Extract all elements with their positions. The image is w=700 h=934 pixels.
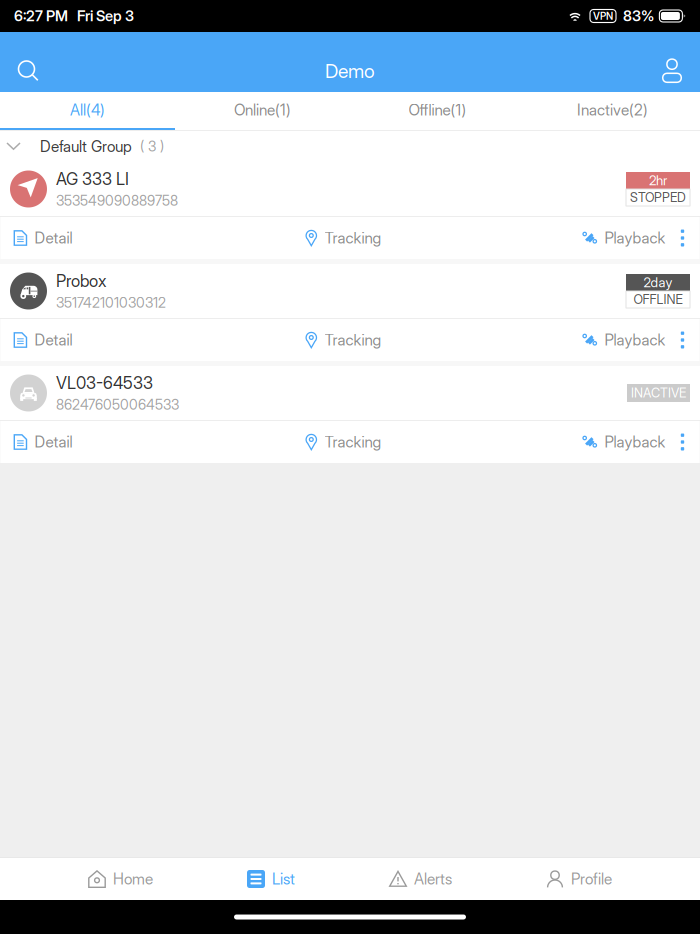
staticText: Demo (325, 59, 375, 83)
button[interactable]: Playback (582, 217, 665, 259)
staticText: 353549090889758 (56, 192, 178, 209)
button[interactable]: Tracking (305, 217, 582, 259)
staticText: Playback (604, 229, 665, 247)
staticText: Detail (34, 229, 72, 247)
button[interactable]: Offline(1) (350, 92, 525, 130)
staticText: AG 333 LI (56, 169, 129, 189)
button[interactable]: Online(1) (175, 92, 350, 130)
button[interactable]: Detail (0, 217, 305, 259)
staticText: VPN (593, 10, 613, 22)
staticText: ( 3 ) (140, 138, 164, 155)
button[interactable]: Playback (582, 319, 665, 361)
button[interactable]: VL03-64533 (0, 366, 700, 420)
staticText: Alerts (414, 870, 452, 888)
button[interactable]: Playback (582, 421, 665, 463)
staticText: Default Group (40, 137, 132, 156)
staticText: Tracking (324, 433, 381, 451)
staticText: 862476050064533 (56, 396, 179, 413)
staticText: Profile (571, 870, 612, 888)
button[interactable]: Alerts (370, 858, 471, 900)
staticText: Online(1) (234, 101, 291, 119)
staticText: 2hr (649, 172, 667, 188)
staticText: 2day (643, 274, 672, 290)
button[interactable]: Account (644, 50, 700, 92)
staticText: Tracking (324, 229, 381, 247)
staticText: Detail (34, 331, 72, 349)
button[interactable]: AG 333 LI (0, 162, 700, 216)
button[interactable]: Detail (0, 421, 305, 463)
button[interactable]: More options (665, 319, 699, 361)
staticText: STOPPED (630, 190, 686, 205)
staticText: Fri Sep 3 (77, 7, 134, 25)
staticText: Playback (604, 331, 665, 349)
button[interactable]: Home (69, 858, 172, 900)
button[interactable]: Probox (0, 264, 700, 318)
staticText: OFFLINE (633, 292, 682, 307)
staticText: VL03-64533 (56, 373, 153, 393)
button[interactable]: More options (665, 421, 699, 463)
staticText: Detail (34, 433, 72, 451)
staticText: 351742101030312 (56, 294, 166, 311)
button[interactable]: Tracking (305, 421, 582, 463)
staticText: Playback (604, 433, 665, 451)
staticText: 6:27 PM (14, 7, 68, 25)
button[interactable]: Search (0, 50, 56, 92)
staticText: List (272, 870, 295, 888)
staticText: All(4) (70, 101, 105, 119)
staticText: Tracking (324, 331, 381, 349)
staticText: Home (113, 870, 153, 888)
button[interactable]: Default Group (0, 131, 700, 162)
button[interactable]: Detail (0, 319, 305, 361)
staticText: Probox (56, 271, 106, 291)
button[interactable]: Inactive(2) (525, 92, 700, 130)
button[interactable]: Tracking (305, 319, 582, 361)
button[interactable]: Profile (527, 858, 631, 900)
button[interactable]: List (228, 858, 314, 900)
staticText: Inactive(2) (577, 101, 648, 119)
button[interactable]: More options (665, 217, 699, 259)
staticText: 83% (623, 7, 654, 25)
button[interactable]: All(4) (0, 92, 175, 130)
staticText: Offline(1) (408, 101, 466, 119)
staticText: INACTIVE (631, 385, 686, 401)
